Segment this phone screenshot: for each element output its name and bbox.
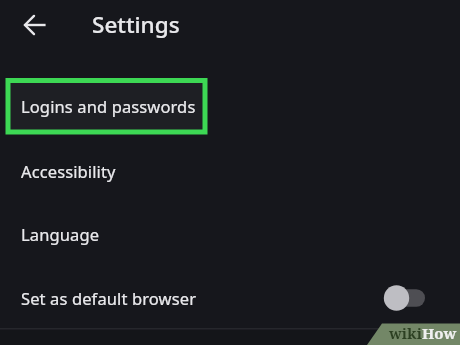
button[interactable]: Set as default browser — [0, 267, 460, 329]
staticText: wiki — [389, 323, 422, 343]
button[interactable]: Accessibility — [0, 140, 460, 202]
staticText: Accessibility — [21, 160, 116, 182]
staticText: Logins and passwords — [21, 95, 196, 117]
staticText: Language — [21, 223, 100, 245]
staticText: Set as default browser — [21, 287, 197, 309]
button[interactable]: Logins and passwords — [0, 75, 460, 137]
button[interactable]: Set as default browser toggle — [383, 283, 425, 313]
button[interactable]: Back — [13, 3, 57, 47]
button[interactable]: Language — [0, 203, 460, 265]
staticText: How — [422, 323, 457, 343]
staticText: Settings — [92, 9, 180, 40]
